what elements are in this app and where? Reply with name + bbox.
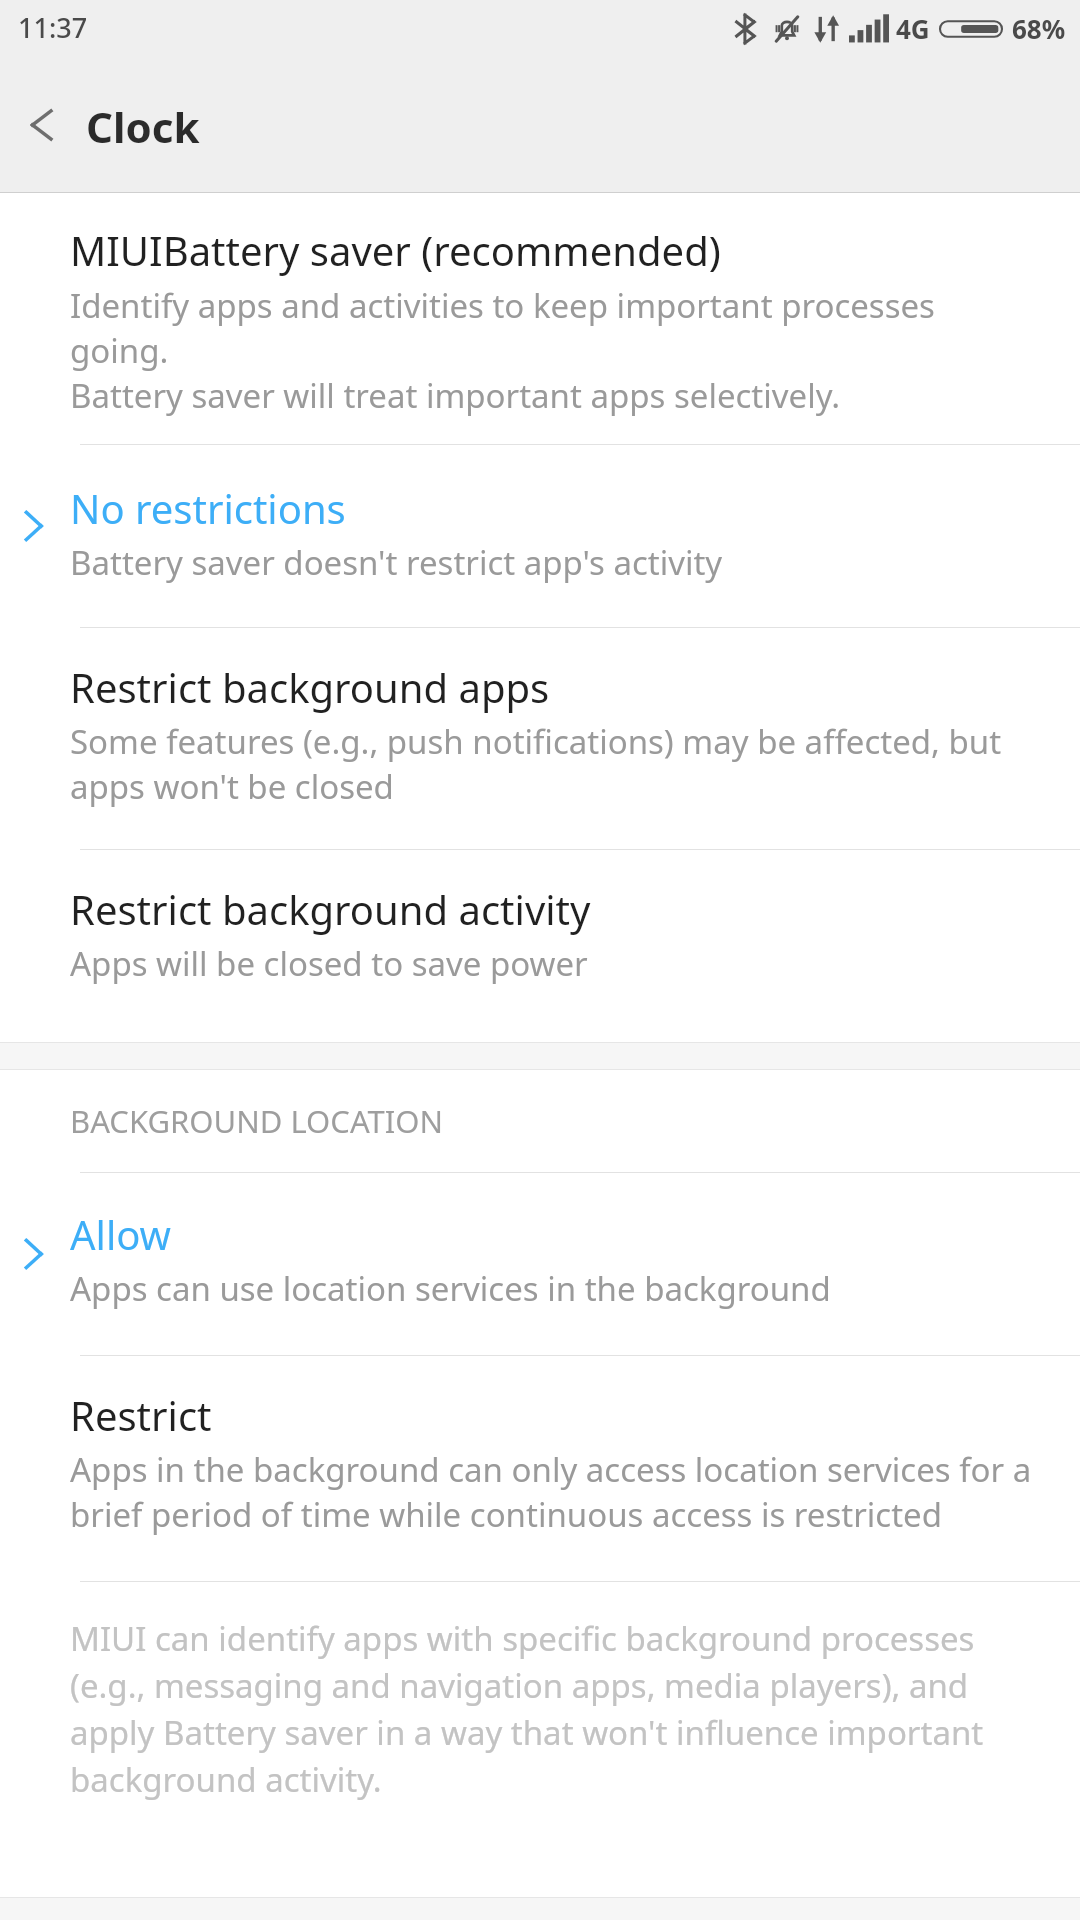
staticText: Battery saver doesn't restrict app's act…	[70, 540, 723, 585]
staticText: Apps in the background can only access l…	[70, 1447, 1040, 1537]
staticText: Restrict background activity	[70, 882, 591, 936]
button[interactable]: Restrict	[0, 1356, 1080, 1581]
staticText: 11:37	[18, 9, 88, 46]
button[interactable]: Back	[0, 75, 84, 175]
staticText: Apps will be closed to save power	[70, 941, 588, 986]
staticText: Apps can use location services in the ba…	[70, 1266, 831, 1311]
staticText: Clock	[86, 98, 200, 155]
staticText: 68%	[1012, 11, 1066, 46]
staticText: Restrict background apps	[70, 660, 550, 714]
staticText: Allow	[70, 1207, 172, 1261]
staticText: 4G	[896, 11, 930, 46]
button[interactable]: No restrictions	[0, 445, 1080, 627]
staticText: Identify apps and activities to keep imp…	[70, 283, 1040, 373]
staticText: BACKGROUND LOCATION	[70, 1100, 444, 1142]
staticText: Some features (e.g., push notifications)…	[70, 719, 1040, 809]
staticText: Restrict	[70, 1388, 212, 1442]
button[interactable]: Restrict background activity	[0, 850, 1080, 1028]
staticText: MIUIBattery saver (recommended)	[70, 223, 721, 277]
staticText: Battery saver will treat important apps …	[70, 373, 841, 418]
button[interactable]: MIUIBattery saver (recommended)	[0, 193, 1080, 444]
staticText: MIUI can identify apps with specific bac…	[70, 1616, 1030, 1802]
button[interactable]: Allow	[0, 1173, 1080, 1355]
button[interactable]: Restrict background apps	[0, 628, 1080, 849]
staticText: No restrictions	[70, 481, 346, 535]
